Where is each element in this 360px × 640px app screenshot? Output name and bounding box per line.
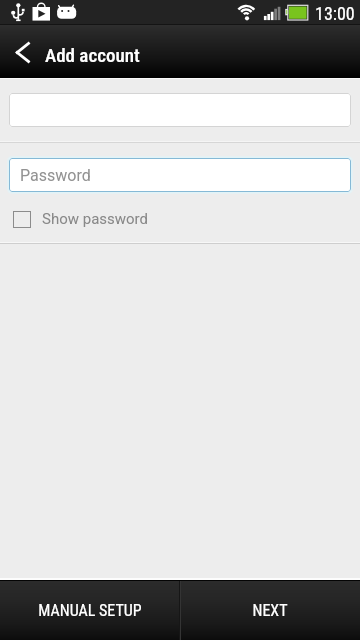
button[interactable]: MANUAL SETUP bbox=[0, 581, 180, 640]
staticText: NEXT bbox=[252, 601, 288, 620]
staticText: MANUAL SETUP bbox=[38, 601, 142, 620]
button[interactable]: Email address bbox=[9, 93, 351, 127]
button[interactable]: Navigate up bbox=[0, 25, 44, 79]
button[interactable]: NEXT bbox=[180, 581, 360, 640]
button[interactable]: Password bbox=[9, 158, 351, 192]
staticText: Add account bbox=[45, 44, 140, 66]
staticText: 13:00 bbox=[315, 3, 355, 24]
staticText: Password bbox=[20, 166, 91, 185]
button[interactable]: Show password bbox=[0, 204, 360, 234]
staticText: Show password bbox=[42, 210, 149, 228]
